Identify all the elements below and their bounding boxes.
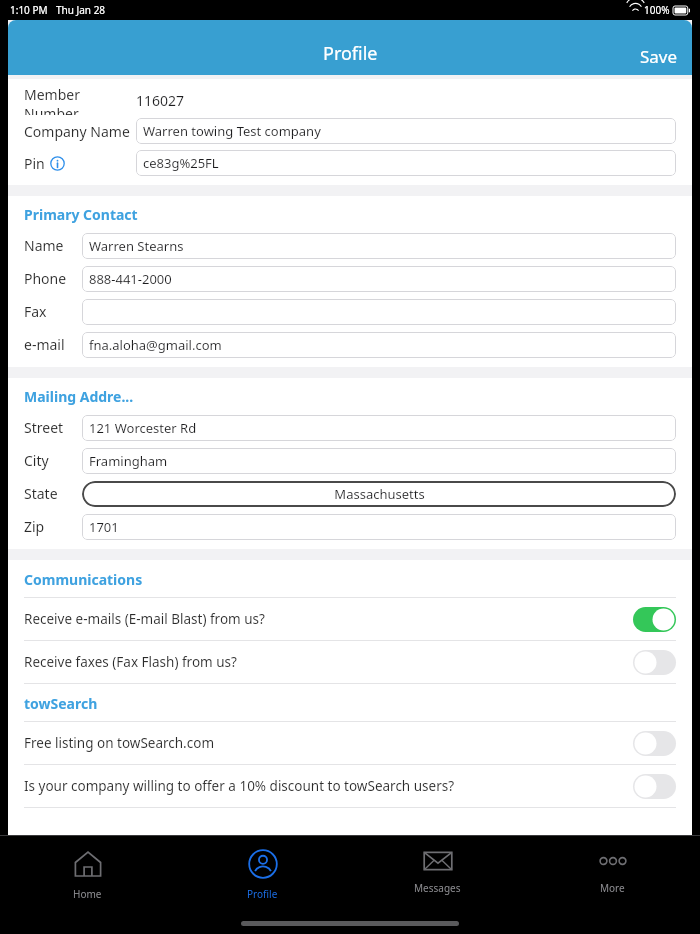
staticText: Thu Jan 28 bbox=[56, 3, 106, 17]
staticText: Name bbox=[24, 236, 82, 255]
button[interactable]: ce83g%25FL bbox=[136, 150, 676, 176]
button[interactable]: 1701 bbox=[82, 514, 676, 540]
staticText: towSearch bbox=[24, 694, 98, 713]
button[interactable]: Save bbox=[640, 45, 692, 75]
button[interactable]: Free listing on towSearch.com bbox=[24, 722, 676, 764]
staticText: 116027 bbox=[136, 91, 185, 110]
button[interactable]: Pin info bbox=[50, 156, 65, 171]
button[interactable]: Warren towing Test company bbox=[136, 118, 676, 144]
staticText: Primary Contact bbox=[24, 205, 138, 224]
button[interactable]: Toggle off bbox=[633, 774, 676, 799]
button[interactable]: fna.aloha@gmail.com bbox=[82, 332, 676, 358]
staticText: Pin bbox=[24, 154, 45, 173]
button[interactable]: Toggle off bbox=[633, 731, 676, 756]
staticText: Warren Stearns bbox=[89, 237, 184, 255]
button[interactable]: More bbox=[525, 835, 700, 934]
staticText: Street bbox=[24, 418, 82, 437]
button[interactable]: Toggle off bbox=[633, 650, 676, 675]
button[interactable]: Warren Stearns bbox=[82, 233, 676, 259]
staticText: Phone bbox=[24, 269, 82, 288]
button[interactable]: Is your company willing to offer a 10% d… bbox=[24, 765, 676, 807]
staticText: City bbox=[24, 451, 82, 470]
staticText: 100% bbox=[644, 3, 670, 17]
button[interactable]: 121 Worcester Rd bbox=[82, 415, 676, 441]
staticText: Warren towing Test company bbox=[143, 122, 321, 140]
staticText: Home bbox=[73, 887, 102, 901]
staticText: 121 Worcester Rd bbox=[89, 419, 197, 437]
staticText: State bbox=[24, 484, 82, 503]
button[interactable]: Massachusetts bbox=[82, 481, 676, 507]
staticText: Company Name bbox=[24, 122, 136, 141]
staticText: Receive faxes (Fax Flash) from us? bbox=[24, 653, 633, 671]
button[interactable]: Profile bbox=[175, 835, 350, 934]
button[interactable]: 888-441-2000 bbox=[82, 266, 676, 292]
staticText: Zip bbox=[24, 517, 82, 536]
button[interactable]: Framingham bbox=[82, 448, 676, 474]
staticText: Communications bbox=[24, 570, 143, 589]
button[interactable]: Messages bbox=[350, 835, 525, 934]
staticText: Profile bbox=[323, 41, 378, 66]
staticText: Profile bbox=[247, 887, 278, 901]
staticText: Free listing on towSearch.com bbox=[24, 734, 633, 752]
staticText: Receive e-mails (E-mail Blast) from us? bbox=[24, 610, 633, 628]
button[interactable]: Home bbox=[0, 835, 175, 934]
staticText: 888-441-2000 bbox=[89, 270, 172, 288]
button[interactable]: Receive e-mails (E-mail Blast) from us? bbox=[24, 598, 676, 640]
staticText: 1701 bbox=[89, 518, 119, 536]
staticText: Save bbox=[640, 45, 678, 68]
staticText: Mailing Addre... bbox=[24, 387, 134, 406]
staticText: More bbox=[600, 881, 625, 895]
staticText: Fax bbox=[24, 302, 82, 321]
button[interactable]: Receive faxes (Fax Flash) from us? bbox=[24, 641, 676, 683]
staticText: Member Number bbox=[24, 85, 136, 115]
staticText: fna.aloha@gmail.com bbox=[89, 336, 222, 354]
staticText: Framingham bbox=[89, 452, 168, 470]
staticText: e-mail bbox=[24, 335, 82, 354]
staticText: ce83g%25FL bbox=[143, 154, 219, 172]
button[interactable]: Toggle on bbox=[633, 607, 676, 632]
staticText: Messages bbox=[414, 881, 461, 895]
staticText: Is your company willing to offer a 10% d… bbox=[24, 777, 633, 795]
staticText: 1:10 PM bbox=[10, 3, 48, 17]
staticText: Massachusetts bbox=[334, 485, 425, 503]
button[interactable] bbox=[82, 299, 676, 325]
